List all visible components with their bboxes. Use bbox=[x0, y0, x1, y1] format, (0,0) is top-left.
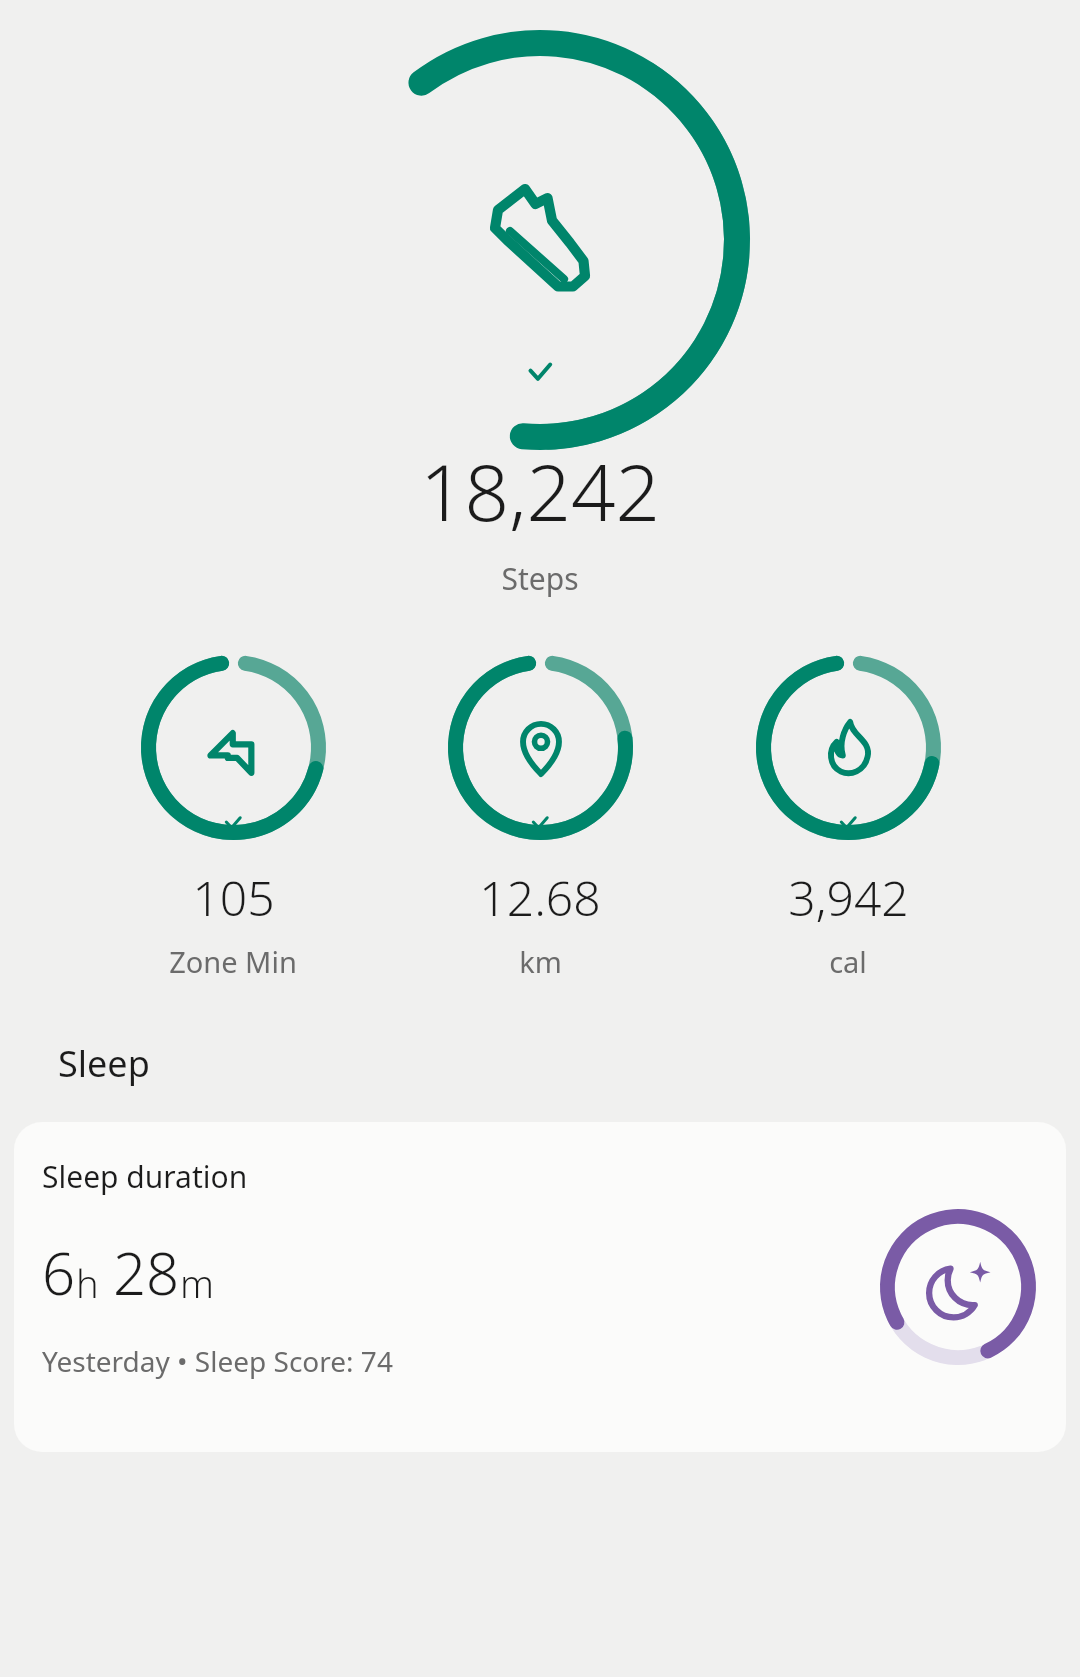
staticText: m bbox=[180, 1257, 214, 1309]
staticText: 18,242 bbox=[0, 438, 1080, 544]
staticText: 6 bbox=[42, 1233, 76, 1312]
button[interactable]: 3,942 bbox=[749, 655, 947, 981]
staticText: Zone Min bbox=[169, 942, 297, 981]
button[interactable]: 105 bbox=[134, 655, 332, 981]
staticText: h bbox=[76, 1257, 99, 1309]
staticText: 3,942 bbox=[788, 865, 909, 930]
staticText: Yesterday • Sleep Score: 74 bbox=[42, 1342, 393, 1380]
button[interactable]: 12.68 bbox=[441, 655, 639, 981]
button[interactable]: Sleep duration bbox=[14, 1122, 1066, 1452]
button[interactable]: Steps progress bbox=[330, 30, 750, 450]
staticText: cal bbox=[829, 942, 867, 981]
staticText: 12.68 bbox=[479, 865, 601, 930]
staticText: Steps bbox=[0, 558, 1080, 599]
staticText: Sleep bbox=[58, 1039, 150, 1088]
staticText: Sleep duration bbox=[42, 1156, 248, 1197]
staticText: km bbox=[519, 942, 562, 981]
staticText: 105 bbox=[192, 865, 275, 930]
staticText: 28 bbox=[113, 1233, 180, 1312]
